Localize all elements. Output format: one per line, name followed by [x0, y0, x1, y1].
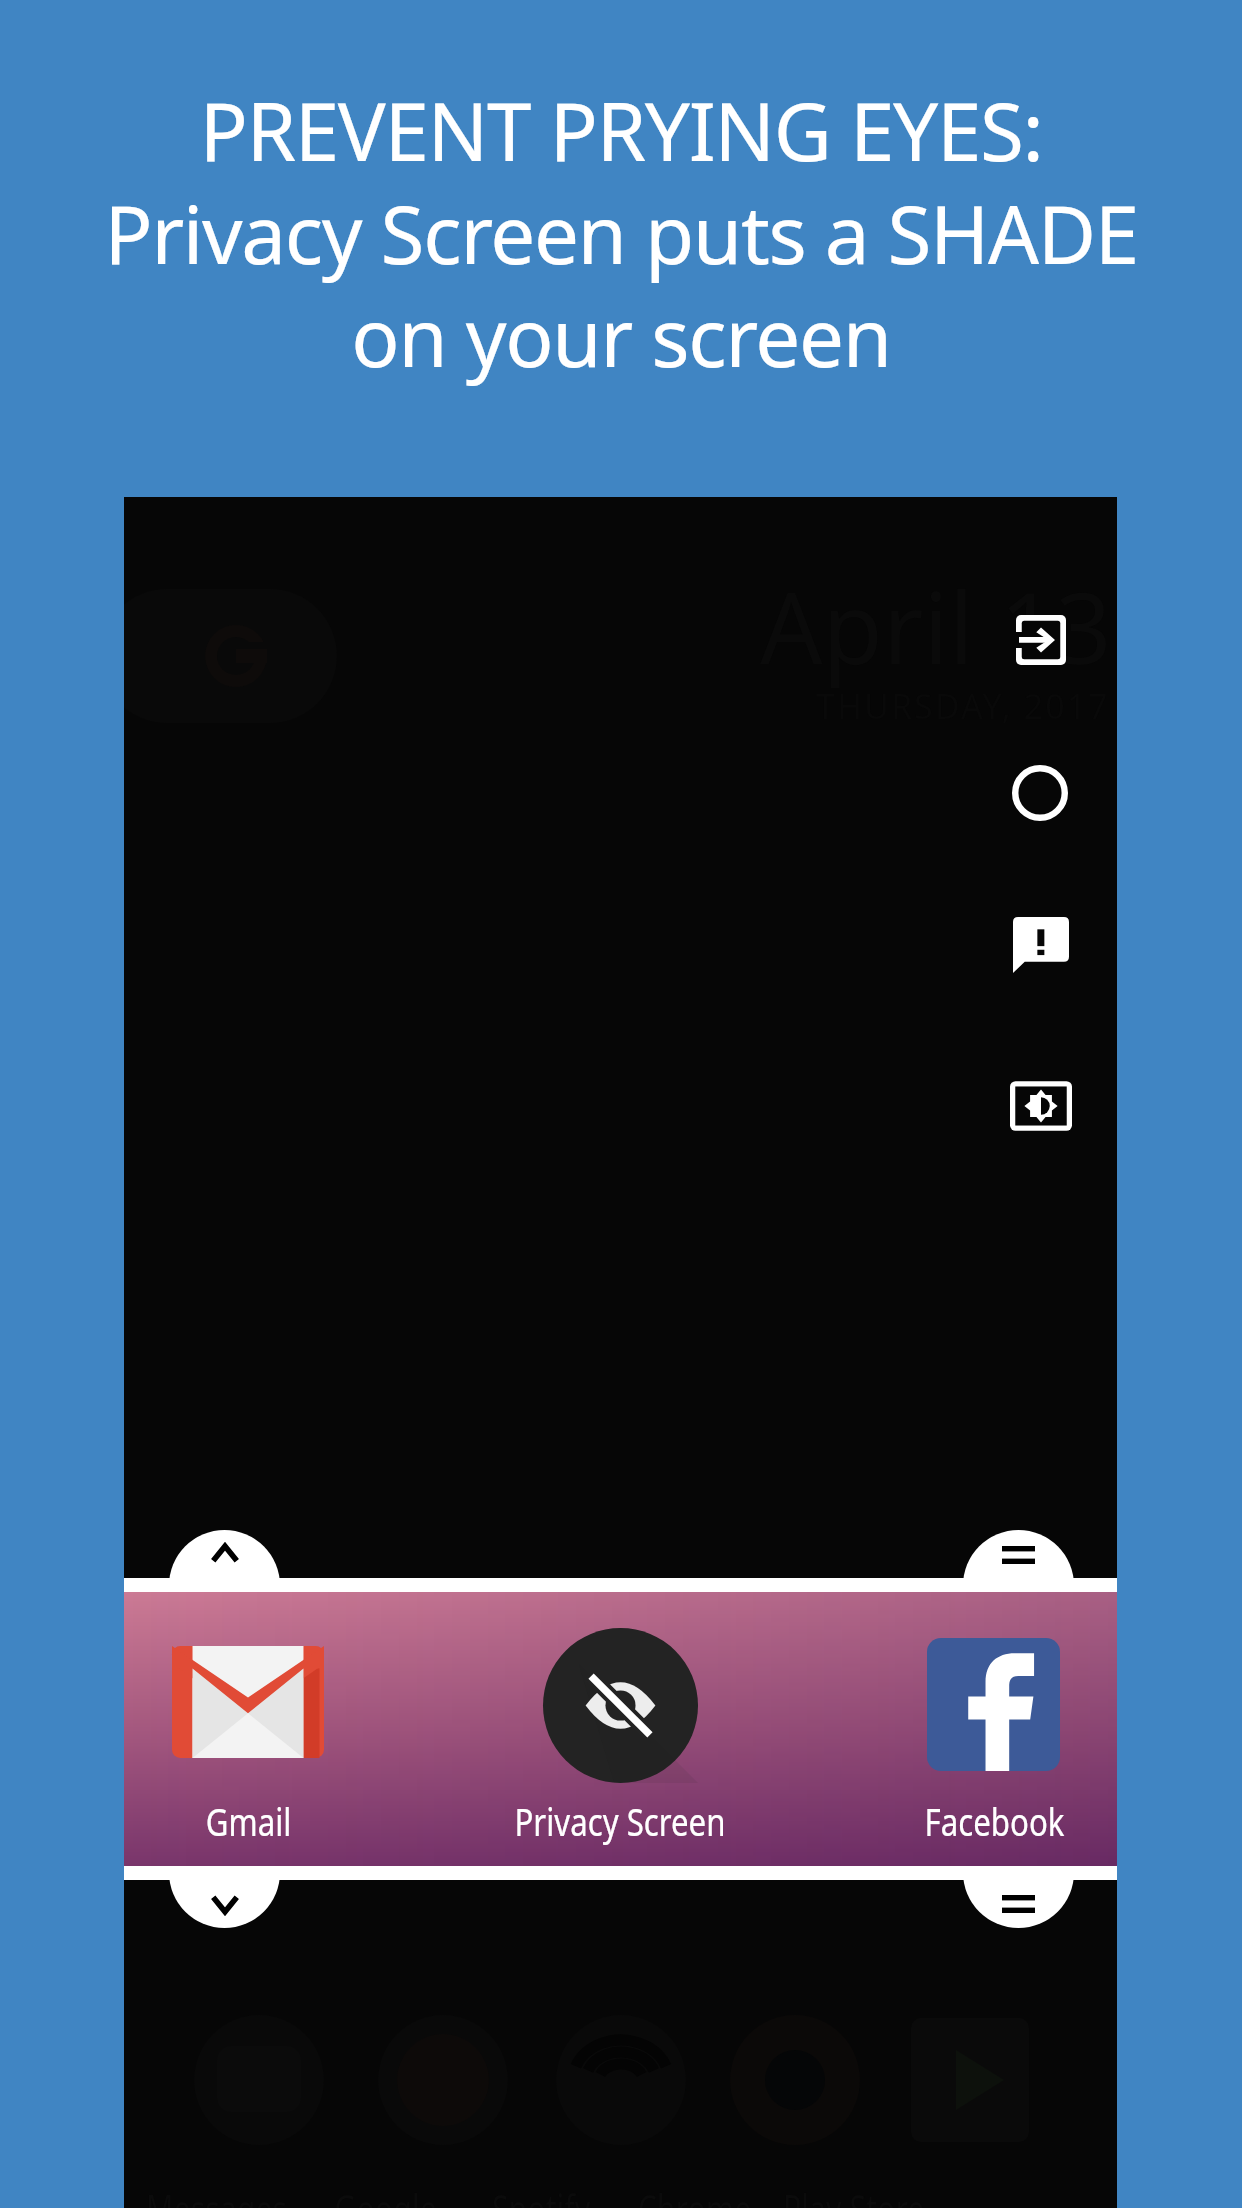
staticText: Facebook	[924, 1794, 1064, 1847]
button[interactable]: Expand	[169, 1530, 280, 1641]
staticText: April 13	[760, 559, 1112, 692]
other: Drag handle	[1002, 1546, 1035, 1564]
button[interactable]: Facebook	[868, 1592, 1117, 1866]
button[interactable]: Collapse	[169, 1817, 280, 1928]
other: Opacity	[1012, 765, 1068, 821]
other: Drag handle	[1002, 1895, 1035, 1913]
other: Collapse	[210, 1894, 240, 1915]
other: Feedback	[1013, 917, 1069, 973]
staticText: Gmail	[206, 1794, 291, 1847]
button[interactable]: Drag handle	[963, 1817, 1074, 1928]
staticText: PREVENT PRYING EYES: Privacy Screen puts…	[104, 75, 1138, 390]
button[interactable]: Opacity	[995, 748, 1085, 838]
button[interactable]: Send feedback	[996, 900, 1086, 990]
button[interactable]: Privacy Screen	[372, 1592, 868, 1866]
other: Exit to app	[1016, 615, 1066, 665]
button[interactable]: Brightness	[996, 1061, 1086, 1151]
other: Brightness	[1010, 1075, 1072, 1137]
other: Expand	[210, 1543, 240, 1564]
button[interactable]: Exit to app	[996, 595, 1086, 685]
button[interactable]: Drag handle	[963, 1530, 1074, 1641]
staticText: Privacy Screen	[514, 1794, 726, 1847]
button[interactable]: Gmail	[124, 1592, 372, 1866]
